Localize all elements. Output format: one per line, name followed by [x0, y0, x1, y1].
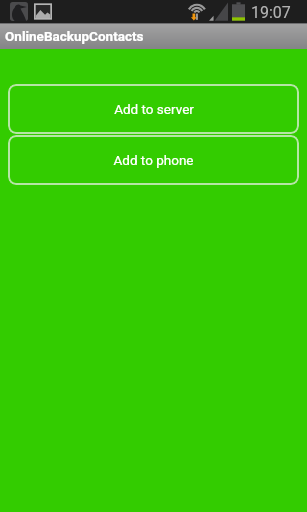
- button[interactable]: Add to server: [8, 84, 299, 134]
- other: Screenshot captured: [34, 2, 52, 21]
- other: Battery: [232, 2, 245, 21]
- other: Wi-Fi connected: [187, 2, 206, 21]
- other: Notification: [10, 2, 28, 21]
- staticText: OnlineBackupContacts: [5, 28, 144, 44]
- other: Mobile signal: [209, 2, 228, 21]
- staticText: Add to phone: [113, 152, 194, 168]
- button[interactable]: Add to phone: [8, 135, 299, 185]
- staticText: 19:07: [251, 3, 291, 22]
- staticText: Add to server: [114, 101, 194, 117]
